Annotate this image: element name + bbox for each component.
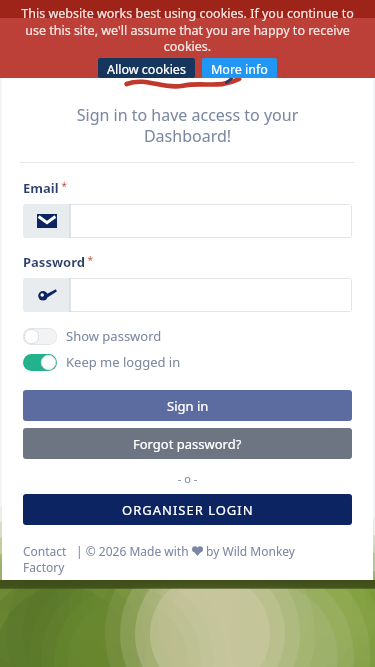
staticText: Factory [23, 559, 65, 575]
staticText: Forgot password? [133, 435, 242, 453]
staticText: Password [23, 253, 85, 271]
staticText: - o - [23, 471, 352, 486]
staticText: | © 2026 Made with [76, 543, 192, 559]
button[interactable] [23, 204, 352, 238]
staticText: * [59, 179, 68, 193]
staticText: Keep me logged in [66, 353, 181, 371]
staticText: Sign in to have access to your Dashboard… [34, 104, 341, 147]
button[interactable]: Contact [23, 543, 67, 559]
staticText: by Wild Monkey [203, 543, 295, 559]
button[interactable] [23, 278, 352, 312]
staticText: More info [211, 61, 268, 75]
staticText: Email [23, 179, 59, 197]
staticText: Show password [66, 327, 162, 345]
staticText: This website works best using cookies. I… [14, 5, 361, 54]
staticText: Sign in [167, 397, 209, 415]
staticText: Allow cookies [107, 61, 186, 75]
button[interactable]: ORGANISER LOGIN [23, 494, 352, 525]
staticText: * [85, 253, 94, 267]
button[interactable]: Sign in [23, 390, 352, 421]
button[interactable]: More info [202, 58, 277, 78]
button[interactable]: Keep me logged in [23, 351, 181, 373]
button[interactable]: Allow cookies [98, 58, 195, 78]
staticText: ORGANISER LOGIN [122, 501, 254, 519]
button[interactable]: Forgot password? [23, 428, 352, 459]
button[interactable]: Show password [23, 325, 162, 347]
